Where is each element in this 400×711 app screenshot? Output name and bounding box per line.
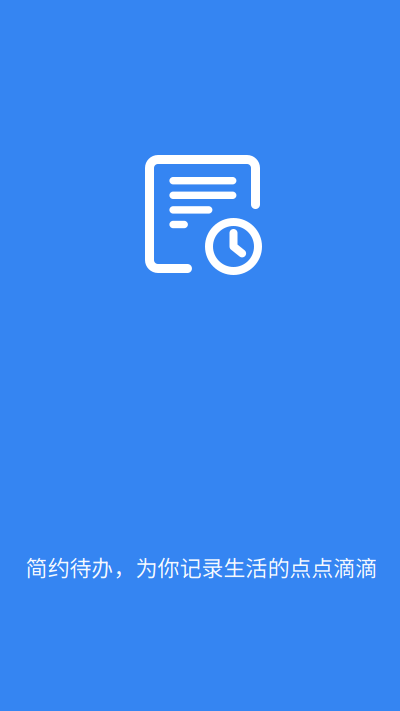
staticText: 简约待办，为你记录生活的点点滴滴 <box>25 551 377 583</box>
